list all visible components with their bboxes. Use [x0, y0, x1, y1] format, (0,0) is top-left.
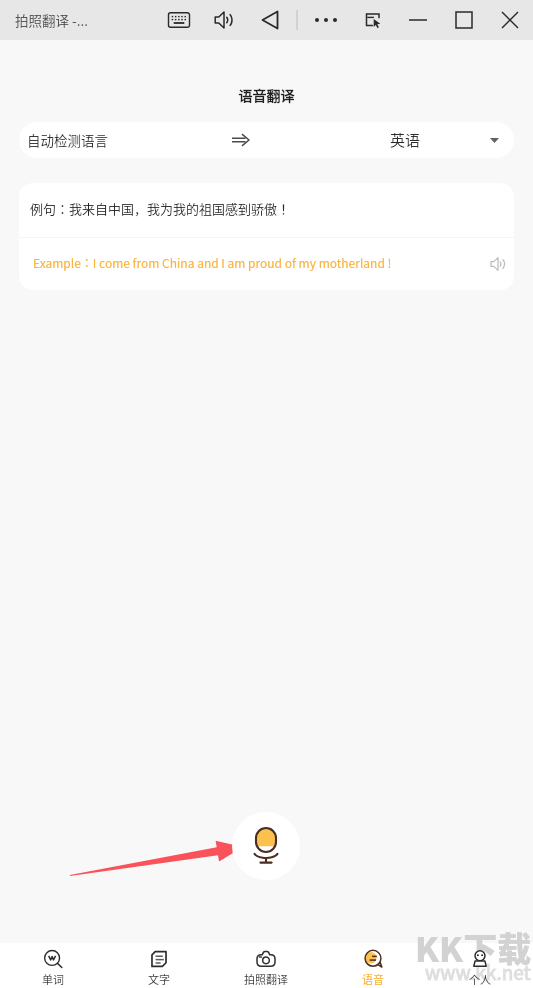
button[interactable]: 英语: [261, 122, 514, 158]
button[interactable]: 弹出窗口: [353, 0, 391, 40]
button[interactable]: 最大化: [445, 0, 483, 40]
button[interactable]: 切换翻译方向: [219, 122, 261, 158]
button[interactable]: 文字: [106, 943, 212, 988]
button[interactable]: 音量: [205, 0, 243, 40]
staticText: 例句：我来自中国，我为我的祖国感到骄傲！: [30, 199, 291, 218]
button[interactable]: 关闭: [491, 0, 529, 40]
staticText: KK下载: [415, 923, 532, 972]
button[interactable]: 按住说话: [232, 812, 300, 880]
staticText: 语音翻译: [0, 85, 533, 105]
staticText: 文字: [148, 971, 170, 987]
button[interactable]: 单词: [0, 943, 106, 988]
staticText: 拍照翻译: [244, 971, 288, 987]
button[interactable]: 更多: [307, 0, 345, 40]
staticText: 单词: [42, 971, 64, 987]
button[interactable]: 返回: [251, 0, 289, 40]
staticText: 拍照翻译 -...: [15, 10, 88, 30]
button[interactable]: 键盘: [160, 0, 198, 40]
staticText: 自动检测语言: [27, 130, 108, 150]
button[interactable]: 拍照翻译: [212, 943, 319, 988]
staticText: 语音: [362, 971, 384, 987]
button[interactable]: 最小化: [399, 0, 437, 40]
staticText: 英语: [390, 129, 421, 151]
button[interactable]: 语音: [319, 943, 426, 988]
button[interactable]: 朗读译文: [483, 249, 513, 279]
staticText: 个人: [469, 971, 491, 987]
button[interactable]: 个人: [426, 943, 533, 988]
staticText: www.kk.net: [425, 958, 531, 986]
staticText: Example：I come from China and I am proud…: [33, 254, 392, 271]
button[interactable]: 自动检测语言: [19, 122, 219, 158]
